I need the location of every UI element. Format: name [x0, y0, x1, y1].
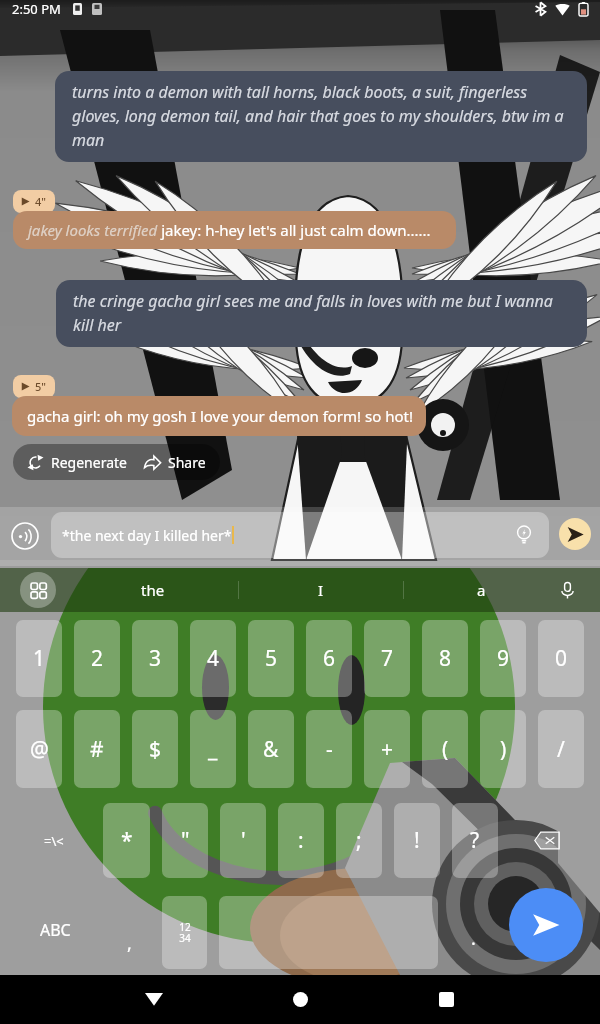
staticText: the: [141, 580, 165, 600]
button[interactable]: 12 34: [162, 896, 207, 969]
staticText: ABC: [40, 919, 71, 941]
button[interactable]: Voice typing: [547, 570, 587, 610]
staticText: the cringe gacha girl sees me and falls …: [73, 290, 572, 336]
button[interactable]: Recent apps: [424, 977, 468, 1021]
staticText: 5": [35, 379, 47, 394]
staticText: ': [241, 826, 246, 855]
button[interactable]: 8: [422, 620, 468, 697]
button[interactable]: ): [480, 710, 526, 788]
staticText: 2:50 PM: [12, 0, 61, 18]
staticText: =\<: [44, 832, 64, 850]
staticText: turns into a demon with tall horns, blac…: [72, 81, 572, 151]
button[interactable]: ABC: [10, 891, 100, 968]
button[interactable]: Home: [278, 977, 322, 1021]
staticText: 6: [323, 644, 336, 673]
staticText: a: [477, 580, 486, 600]
staticText: ,: [127, 931, 132, 956]
staticText: &: [263, 735, 279, 764]
staticText: 7: [381, 644, 394, 673]
button[interactable]: ,: [102, 891, 157, 968]
staticText: !: [414, 826, 420, 855]
staticText: 1: [33, 644, 46, 673]
staticText: @: [30, 735, 49, 764]
button[interactable]: 0: [538, 620, 584, 697]
staticText: Regenerate: [51, 453, 127, 472]
button[interactable]: Share: [144, 453, 206, 472]
button[interactable]: &: [248, 710, 294, 788]
staticText: #: [90, 735, 104, 764]
button[interactable]: Send: [559, 518, 591, 550]
button[interactable]: turns into a demon with tall horns, blac…: [55, 71, 587, 162]
staticText: 9: [497, 644, 510, 673]
staticText: Share: [168, 453, 206, 472]
staticText: 4: [207, 644, 220, 673]
button[interactable]: /: [538, 710, 584, 788]
staticText: /: [557, 735, 565, 764]
staticText: jakey looks terrified jakey: h-hey let's…: [28, 220, 431, 240]
staticText: ?: [470, 826, 480, 855]
button[interactable]: *: [103, 803, 150, 878]
button[interactable]: ?: [452, 803, 498, 878]
button[interactable]: Space: [219, 896, 438, 969]
button[interactable]: !: [394, 803, 440, 878]
button[interactable]: jakey looks terrified jakey: h-hey let's…: [13, 211, 456, 249]
button[interactable]: 6: [306, 620, 352, 697]
button[interactable]: 3: [132, 620, 178, 697]
staticText: *: [121, 826, 133, 855]
button[interactable]: Backspace: [510, 803, 584, 878]
button[interactable]: 1: [16, 620, 62, 697]
button[interactable]: the cringe gacha girl sees me and falls …: [56, 280, 587, 347]
button[interactable]: (: [422, 710, 468, 788]
staticText: ): [500, 735, 507, 764]
button[interactable]: Keyboard menu: [20, 572, 56, 608]
button[interactable]: 7: [364, 620, 410, 697]
staticText: 12 34: [179, 920, 191, 945]
button[interactable]: 4: [190, 620, 236, 697]
staticText: ;: [356, 826, 362, 855]
staticText: 3: [149, 644, 162, 673]
staticText: (: [442, 735, 449, 764]
staticText: 0: [555, 644, 568, 673]
staticText: -: [326, 735, 333, 764]
button[interactable]: Suggestions: [509, 520, 539, 550]
button[interactable]: @: [16, 710, 62, 788]
button[interactable]: 4": [13, 190, 55, 213]
button[interactable]: +: [364, 710, 410, 788]
button[interactable]: $: [132, 710, 178, 788]
staticText: 4": [35, 194, 47, 209]
button[interactable]: 5": [13, 375, 55, 398]
button[interactable]: Voice input: [9, 520, 41, 552]
button[interactable]: Regenerate: [27, 453, 127, 472]
button[interactable]: ": [162, 803, 208, 878]
button[interactable]: :: [278, 803, 324, 878]
staticText: 5: [265, 644, 278, 673]
button[interactable]: .: [448, 891, 498, 968]
staticText: 8: [439, 644, 452, 673]
staticText: .: [471, 926, 476, 951]
button[interactable]: _: [190, 710, 236, 788]
button[interactable]: ;: [336, 803, 382, 878]
button[interactable]: #: [74, 710, 120, 788]
staticText: $: [149, 735, 162, 764]
staticText: I: [318, 580, 324, 600]
button[interactable]: 9: [480, 620, 526, 697]
staticText: 2: [91, 644, 104, 673]
button[interactable]: 5: [248, 620, 294, 697]
button[interactable]: =\<: [16, 803, 91, 878]
staticText: _: [208, 735, 218, 764]
button[interactable]: gacha girl: oh my gosh I love your demon…: [12, 396, 426, 436]
button[interactable]: Back: [132, 977, 176, 1021]
button[interactable]: 2: [74, 620, 120, 697]
staticText: gacha girl: oh my gosh I love your demon…: [27, 406, 413, 426]
button[interactable]: -: [306, 710, 352, 788]
staticText: :: [298, 826, 304, 855]
staticText: ": [181, 826, 190, 855]
staticText: +: [381, 735, 394, 764]
button[interactable]: *the next day I killed her*: [51, 512, 549, 558]
button[interactable]: Enter: [509, 888, 583, 962]
staticText: *the next day I killed her*: [62, 526, 232, 545]
button[interactable]: ': [220, 803, 266, 878]
